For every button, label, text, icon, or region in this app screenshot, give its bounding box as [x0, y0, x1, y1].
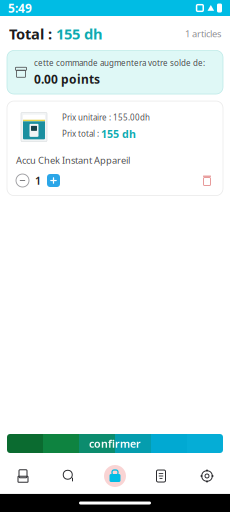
- staticText: 1 articles: [185, 27, 221, 40]
- staticText: 0.00 points: [34, 71, 100, 87]
- button[interactable]: Cart: [92, 461, 138, 491]
- staticText: 155 dh: [101, 127, 136, 141]
- button[interactable]: Search: [46, 461, 92, 491]
- button[interactable]: confirmer: [0, 434, 230, 453]
- staticText: Prix total :: [62, 128, 101, 139]
- staticText: confirmer: [89, 436, 141, 451]
- staticText: Prix unitaire : 155.00dh: [62, 112, 150, 123]
- staticText: Accu Chek Instant Appareil: [16, 154, 130, 166]
- button[interactable]: Settings: [184, 461, 230, 491]
- button[interactable]: Increase quantity: [47, 174, 60, 187]
- staticText: 1: [35, 173, 41, 188]
- button[interactable]: Home: [0, 461, 46, 491]
- staticText: 155 dh: [56, 24, 103, 43]
- staticText: Total :: [9, 24, 56, 43]
- staticText: 5:49: [8, 0, 32, 16]
- button[interactable]: Orders: [138, 461, 184, 491]
- button[interactable]: Delete item: [200, 173, 214, 187]
- staticText: cette commande augmentera votre solde de…: [34, 57, 205, 68]
- button[interactable]: Decrease quantity: [16, 174, 29, 187]
